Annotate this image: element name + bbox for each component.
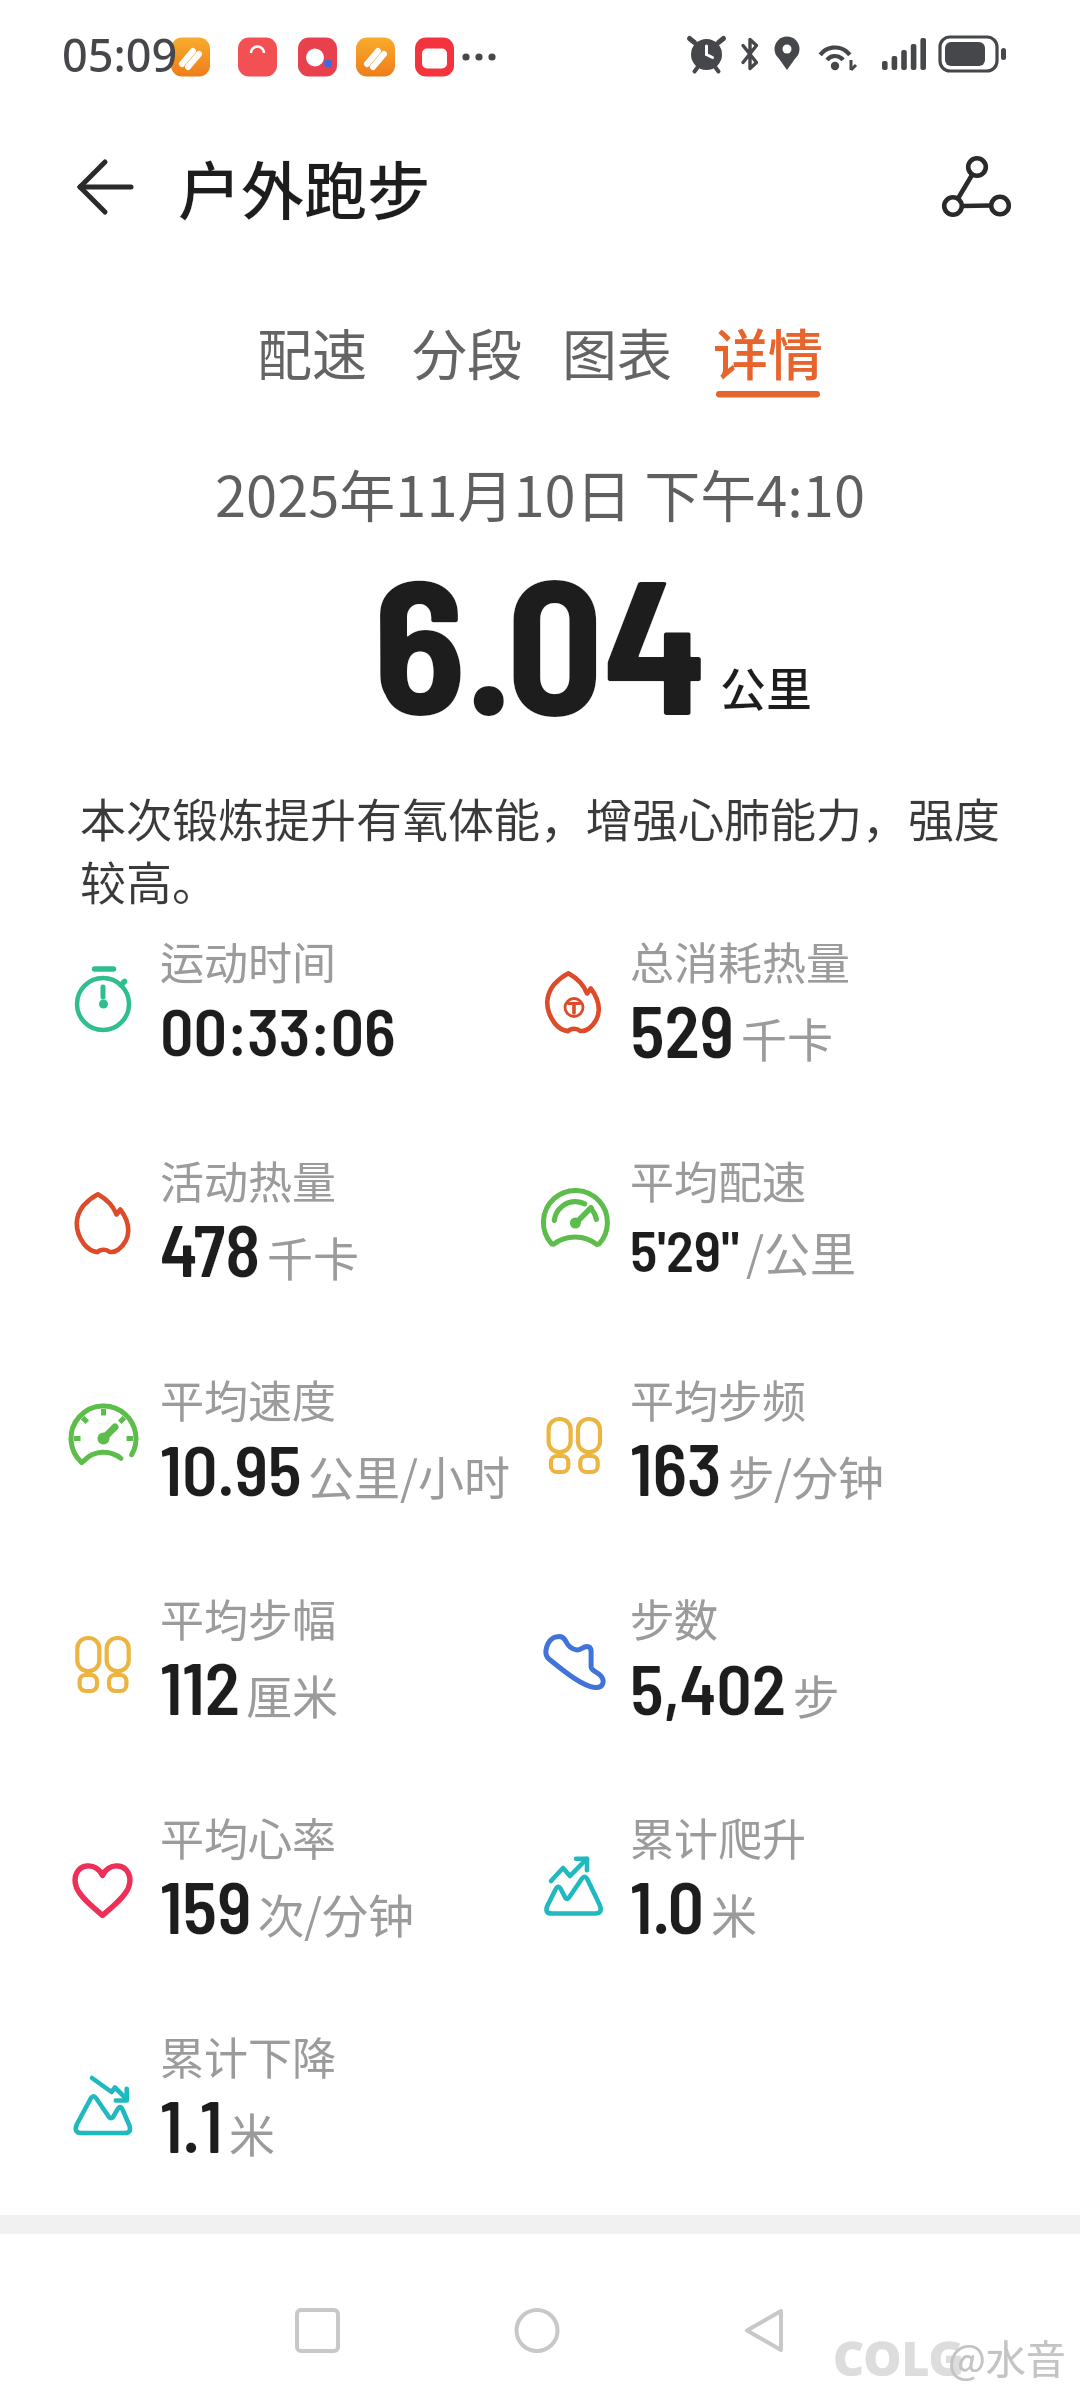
staticText: 5'29" xyxy=(630,1215,740,1283)
staticText: 05:09 xyxy=(62,24,178,85)
staticText: 平均步频 xyxy=(630,1367,806,1431)
button[interactable] xyxy=(707,2290,807,2375)
button[interactable] xyxy=(696,300,841,405)
staticText: 步/分钟 xyxy=(728,1442,885,1509)
staticText: 详情 xyxy=(713,311,824,391)
button[interactable] xyxy=(60,140,155,235)
staticText: /公里 xyxy=(746,1218,857,1285)
staticText: 112 xyxy=(160,1643,240,1729)
button[interactable] xyxy=(545,300,690,405)
staticText: 运动时间 xyxy=(160,929,336,993)
staticText: 1.0 xyxy=(630,1862,705,1948)
staticText: 2025年11月10日 下午4:10 xyxy=(215,452,865,533)
staticText: 配速 xyxy=(257,311,368,391)
button[interactable] xyxy=(487,2290,587,2375)
staticText: 千卡 xyxy=(741,1004,833,1071)
staticText: 活动热量 xyxy=(160,1148,336,1212)
staticText: 10.95 xyxy=(160,1426,302,1510)
staticText: 厘米 xyxy=(246,1661,338,1728)
staticText: 图表 xyxy=(562,311,673,391)
staticText: 千卡 xyxy=(267,1223,359,1290)
staticText: 米 xyxy=(229,2099,275,2166)
staticText: 478 xyxy=(160,1205,261,1291)
staticText: @水音 xyxy=(948,2328,1066,2386)
staticText: 户外跑步 xyxy=(178,141,430,232)
staticText: 次/分钟 xyxy=(258,1880,415,1947)
staticText: 较高。 xyxy=(80,847,218,914)
button[interactable] xyxy=(240,300,385,405)
staticText: 本次锻炼提升有氧体能，增强心肺能力，强度 xyxy=(80,784,1000,851)
button[interactable] xyxy=(928,145,1023,235)
staticText: 公里/小时 xyxy=(308,1442,511,1509)
staticText: 米 xyxy=(711,1880,757,1947)
staticText: 00:33:06 xyxy=(160,990,396,1069)
staticText: 529 xyxy=(630,986,735,1072)
staticText: 6.04 xyxy=(373,525,707,753)
staticText: 总消耗热量 xyxy=(630,929,850,993)
button[interactable] xyxy=(395,300,540,405)
staticText: 159 xyxy=(160,1862,252,1948)
staticText: 163 xyxy=(630,1424,722,1510)
staticText: 分段 xyxy=(412,311,523,391)
staticText: 平均速度 xyxy=(160,1367,336,1431)
staticText: 5,402 xyxy=(630,1645,787,1729)
staticText: 累计下降 xyxy=(160,2024,336,2088)
staticText: 平均心率 xyxy=(160,1805,336,1869)
button[interactable] xyxy=(267,2290,367,2375)
staticText: COLG xyxy=(833,2325,964,2387)
staticText: 步数 xyxy=(630,1586,718,1650)
staticText: 公里 xyxy=(720,653,812,720)
staticText: 步 xyxy=(793,1661,839,1728)
staticText: 平均配速 xyxy=(630,1148,806,1212)
staticText: 平均步幅 xyxy=(160,1586,336,1650)
staticText: 累计爬升 xyxy=(630,1805,806,1869)
staticText: 1.1 xyxy=(160,2081,223,2167)
